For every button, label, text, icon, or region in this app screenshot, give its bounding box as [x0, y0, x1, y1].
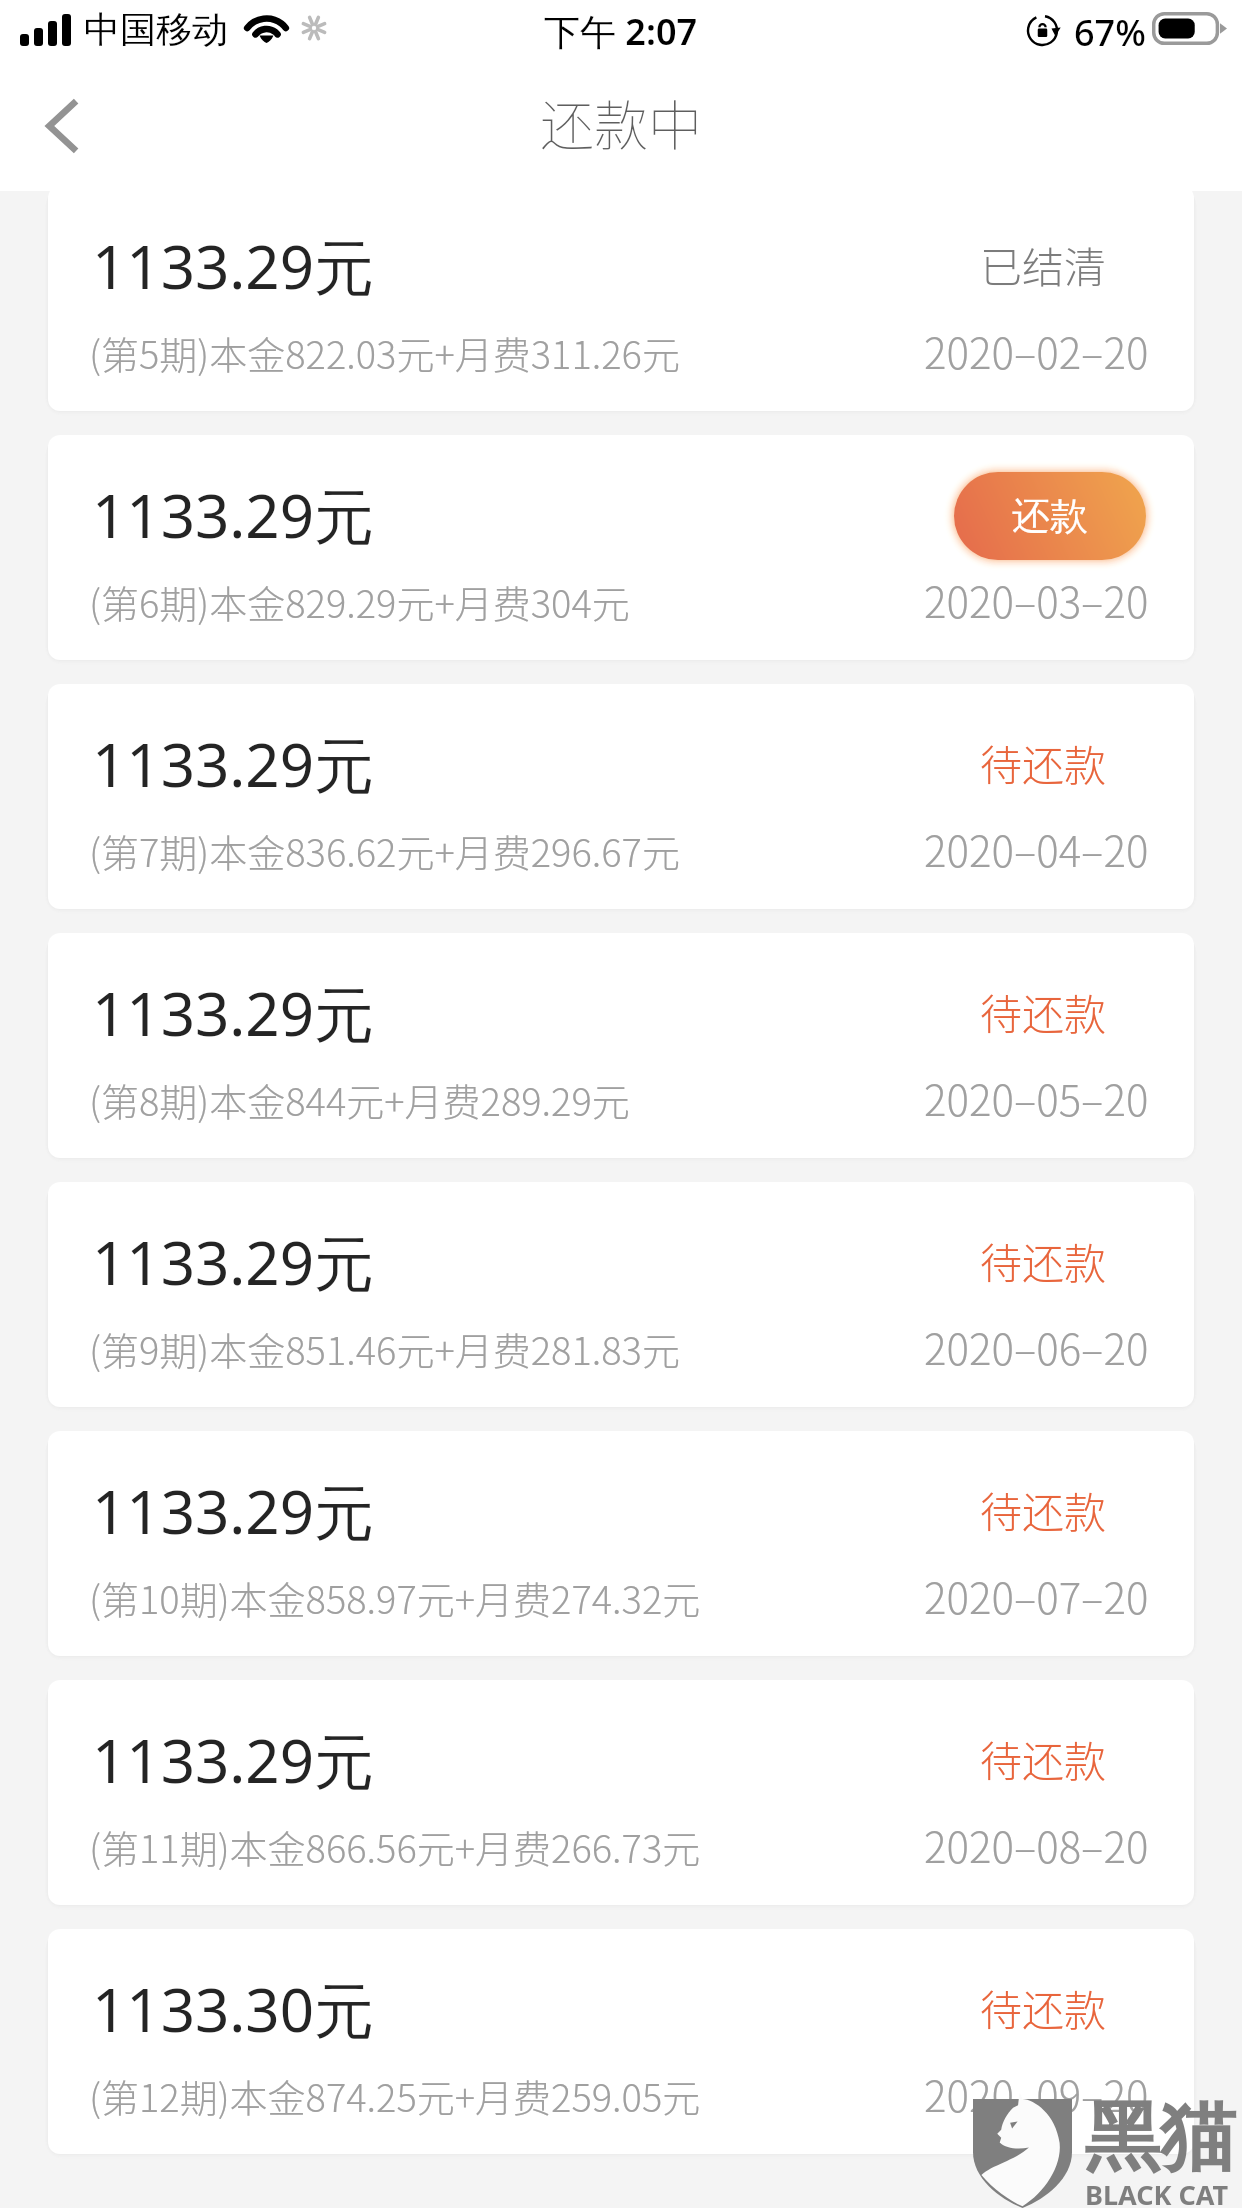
staticText: 1133.30元: [92, 1968, 374, 2050]
button[interactable]: 1133.29元: [48, 684, 1194, 909]
staticText: 2020–03–20: [924, 569, 1149, 630]
staticText: 2020–09–20: [924, 2063, 1149, 2124]
staticText: (第6期)本金829.29元+月费304元: [89, 574, 630, 629]
staticText: 1133.29元: [92, 1221, 374, 1303]
button[interactable]: 1133.29元: [48, 186, 1194, 411]
staticText: 中国移动: [84, 7, 228, 52]
staticText: 黑猫: [1084, 2090, 1236, 2186]
staticText: 待还款: [980, 981, 1107, 1042]
staticText: 1133.29元: [92, 225, 374, 307]
staticText: BLACK CAT: [1085, 2176, 1229, 2208]
staticText: (第7期)本金836.62元+月费296.67元: [89, 823, 680, 878]
staticText: 2020–06–20: [924, 1316, 1149, 1377]
staticText: 待还款: [980, 732, 1107, 793]
button[interactable]: 1133.29元: [48, 435, 1194, 660]
staticText: (第9期)本金851.46元+月费281.83元: [89, 1321, 680, 1376]
button[interactable]: 1133.29元: [48, 1431, 1194, 1656]
staticText: 2020–07–20: [924, 1565, 1149, 1626]
staticText: 还款中: [540, 83, 702, 161]
button[interactable]: 1133.29元: [48, 1680, 1194, 1905]
staticText: 2020–05–20: [924, 1067, 1149, 1128]
button[interactable]: 1133.30元: [48, 1929, 1194, 2154]
staticText: 待还款: [980, 1728, 1107, 1789]
staticText: 2020–02–20: [924, 320, 1149, 381]
staticText: 待还款: [980, 1479, 1107, 1540]
staticText: (第11期)本金866.56元+月费266.73元: [89, 1819, 701, 1874]
staticText: 1133.29元: [92, 474, 374, 556]
button[interactable]: 还款: [942, 460, 1158, 572]
staticText: 1133.29元: [92, 1719, 374, 1801]
staticText: 待还款: [980, 1977, 1107, 2038]
staticText: 1133.29元: [92, 1470, 374, 1552]
staticText: 1133.29元: [92, 723, 374, 805]
button[interactable]: 1133.29元: [48, 1182, 1194, 1407]
staticText: 还款: [1012, 492, 1088, 540]
staticText: (第10期)本金858.97元+月费274.32元: [89, 1570, 701, 1625]
staticText: 下午 2:07: [544, 7, 698, 56]
button[interactable]: 1133.29元: [48, 933, 1194, 1158]
staticText: 67%: [1074, 8, 1146, 57]
staticText: 2020–08–20: [924, 1814, 1149, 1875]
staticText: 2020–04–20: [924, 818, 1149, 879]
staticText: 已结清: [980, 234, 1107, 295]
button[interactable]: Back: [26, 94, 96, 164]
staticText: (第8期)本金844元+月费289.29元: [89, 1072, 630, 1127]
staticText: (第5期)本金822.03元+月费311.26元: [89, 325, 680, 380]
staticText: (第12期)本金874.25元+月费259.05元: [89, 2068, 701, 2123]
staticText: 待还款: [980, 1230, 1107, 1291]
staticText: 1133.29元: [92, 972, 374, 1054]
